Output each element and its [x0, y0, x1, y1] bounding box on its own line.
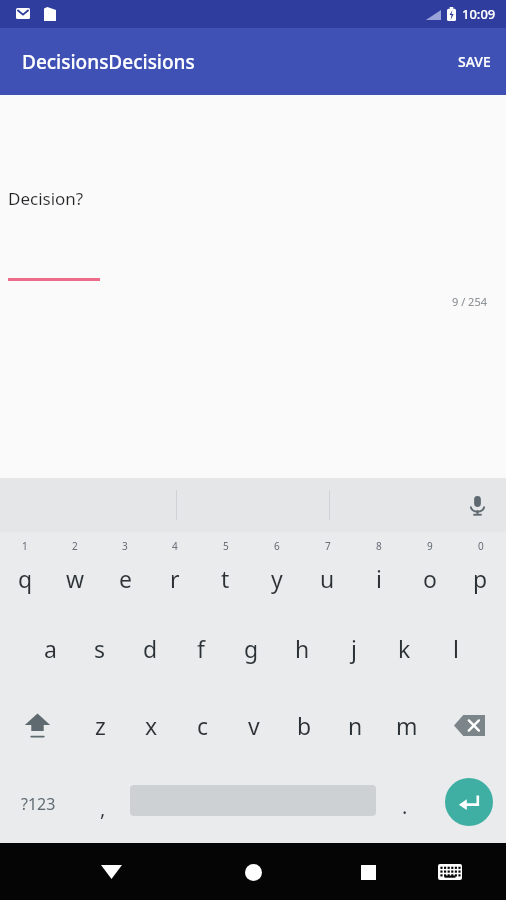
button[interactable]: Shift — [0, 687, 74, 764]
button[interactable]: 6 — [251, 532, 302, 610]
button[interactable]: m — [381, 687, 432, 764]
staticText: z — [95, 710, 106, 741]
staticText: 1 — [22, 539, 28, 553]
staticText: 9 — [427, 539, 433, 553]
button[interactable]: 2 — [50, 532, 100, 610]
button[interactable]: . — [380, 764, 430, 843]
staticText: x — [145, 710, 158, 741]
button[interactable]: a — [25, 610, 75, 687]
staticText: q — [18, 563, 33, 594]
staticText: 2 — [72, 539, 78, 553]
staticText: a — [44, 633, 57, 664]
button[interactable]: b — [279, 687, 330, 764]
button[interactable]: d — [125, 610, 175, 687]
button[interactable]: 3 — [100, 532, 150, 610]
staticText: w — [66, 563, 85, 594]
staticText: b — [297, 710, 312, 741]
staticText: y — [271, 563, 283, 594]
staticText: c — [197, 710, 209, 741]
staticText: v — [248, 710, 260, 741]
button[interactable]: 9 — [404, 532, 455, 610]
button[interactable]: Voice input — [456, 484, 498, 526]
button[interactable]: , — [76, 764, 130, 843]
button[interactable]: x — [126, 687, 177, 764]
button[interactable]: s — [75, 610, 125, 687]
staticText: o — [423, 563, 437, 594]
staticText: r — [170, 563, 180, 594]
button[interactable]: z — [74, 687, 126, 764]
staticText: d — [143, 633, 158, 664]
staticText: . — [402, 793, 408, 820]
staticText: 0 — [478, 539, 484, 553]
staticText: e — [119, 563, 132, 594]
button[interactable]: 5 — [200, 532, 251, 610]
staticText: DecisionsDecisions — [22, 49, 195, 75]
button[interactable]: Recents — [342, 846, 394, 898]
button[interactable]: 7 — [302, 532, 353, 610]
staticText: SAVE — [458, 52, 491, 71]
button[interactable]: Home — [227, 846, 279, 898]
staticText: Decision? — [8, 187, 84, 210]
staticText: 4 — [172, 539, 178, 553]
button[interactable]: SAVE — [443, 36, 506, 87]
staticText: i — [376, 563, 382, 594]
staticText: u — [320, 563, 335, 594]
button[interactable]: Back — [85, 846, 137, 898]
staticText: 7 — [325, 539, 331, 553]
staticText: g — [244, 633, 259, 664]
button[interactable]: v — [228, 687, 279, 764]
staticText: 10:09 — [462, 5, 496, 23]
staticText: m — [396, 710, 418, 741]
staticText: 8 — [376, 539, 382, 553]
button[interactable]: k — [379, 610, 430, 687]
staticText: 6 — [274, 539, 280, 553]
button[interactable]: 4 — [150, 532, 200, 610]
staticText: h — [295, 633, 310, 664]
staticText: s — [94, 633, 106, 664]
button[interactable]: 8 — [353, 532, 404, 610]
button[interactable]: c — [177, 687, 228, 764]
button[interactable]: ?123 — [0, 764, 76, 843]
button[interactable]: f — [175, 610, 226, 687]
button[interactable]: n — [330, 687, 381, 764]
staticText: p — [473, 563, 488, 594]
staticText: l — [453, 633, 459, 664]
button[interactable]: j — [328, 610, 379, 687]
staticText: n — [348, 710, 363, 741]
staticText: 9 / 254 — [452, 294, 487, 309]
button[interactable]: Switch keyboard — [426, 848, 474, 896]
staticText: k — [398, 633, 411, 664]
staticText: , — [100, 795, 106, 822]
staticText: f — [197, 633, 205, 664]
button[interactable]: 0 — [455, 532, 506, 610]
staticText: t — [221, 563, 230, 594]
button[interactable]: g — [226, 610, 277, 687]
button[interactable]: h — [277, 610, 328, 687]
staticText: 5 — [223, 539, 229, 553]
button[interactable]: Enter — [445, 778, 493, 826]
staticText: 3 — [122, 539, 128, 553]
staticText: ?123 — [21, 793, 56, 815]
button[interactable]: 1 — [0, 532, 50, 610]
staticText: j — [351, 633, 357, 664]
button[interactable]: l — [430, 610, 481, 687]
button[interactable]: Backspace — [432, 687, 506, 764]
